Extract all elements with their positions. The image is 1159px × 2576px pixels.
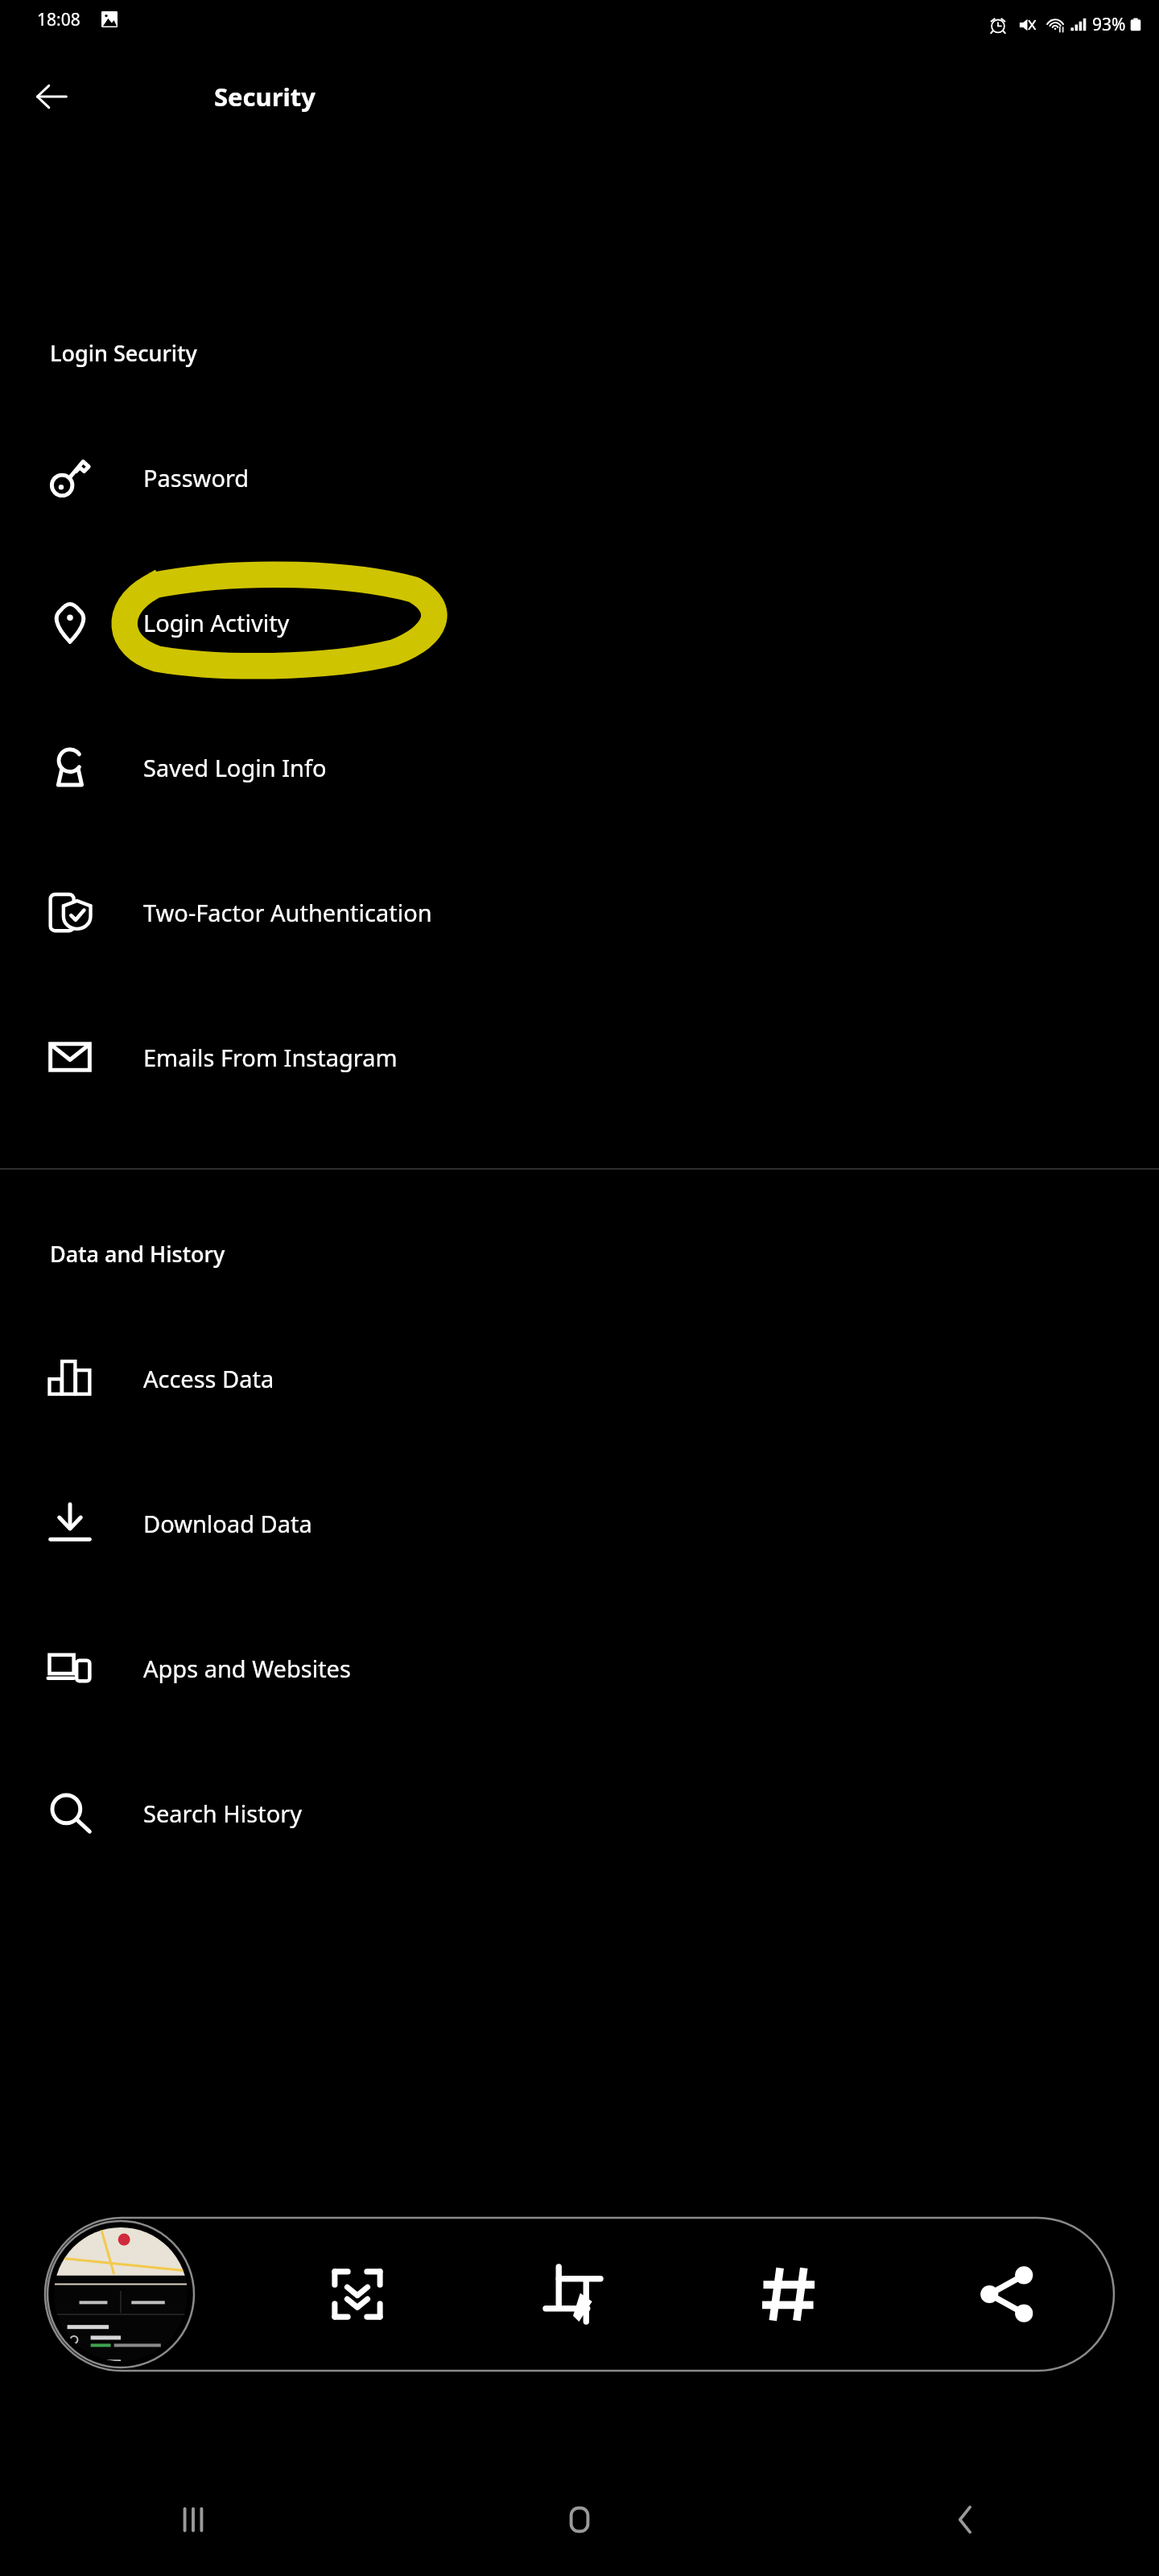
button[interactable]: Saved Login Info <box>0 695 1159 840</box>
staticText: Search History <box>143 1798 302 1829</box>
staticText: Data and History <box>50 1239 225 1269</box>
staticText: 18:08 <box>37 8 80 31</box>
button[interactable]: Back <box>773 2463 1159 2576</box>
staticText: Saved Login Info <box>143 752 327 783</box>
button[interactable]: Screenshot preview <box>42 2218 200 2371</box>
button[interactable]: Tags <box>681 2218 897 2371</box>
button[interactable]: Download Data <box>0 1451 1159 1596</box>
staticText: Apps and Websites <box>143 1653 351 1684</box>
button[interactable]: Access Data <box>0 1306 1159 1451</box>
staticText: Security <box>214 80 316 114</box>
staticText: Access Data <box>143 1363 274 1394</box>
button[interactable]: Login Activity <box>0 550 1159 695</box>
button[interactable]: Search History <box>0 1740 1159 1885</box>
staticText: Emails From Instagram <box>143 1042 398 1073</box>
button[interactable]: Back <box>23 68 80 126</box>
button[interactable]: Crop <box>465 2218 681 2371</box>
button[interactable]: Home <box>386 2463 773 2576</box>
button[interactable]: Password <box>0 405 1159 550</box>
staticText: Login Activity <box>143 607 290 638</box>
staticText: Password <box>143 462 250 493</box>
staticText: Two-Factor Authentication <box>143 897 432 928</box>
button[interactable]: Emails From Instagram <box>0 985 1159 1129</box>
staticText: 93% <box>1092 13 1126 36</box>
button[interactable]: Share <box>897 2218 1114 2371</box>
button[interactable]: Scroll capture <box>250 2218 465 2371</box>
button[interactable]: Recents <box>0 2463 386 2576</box>
button[interactable]: Two-Factor Authentication <box>0 840 1159 985</box>
staticText: Download Data <box>143 1508 312 1539</box>
button[interactable]: Apps and Websites <box>0 1596 1159 1740</box>
staticText: Login Security <box>50 338 197 368</box>
